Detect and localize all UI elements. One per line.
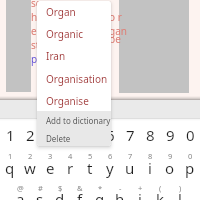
- staticText: u: [125, 158, 135, 178]
- button[interactable]: s: [30, 189, 50, 200]
- button[interactable]: 0: [180, 151, 200, 165]
- staticText: (: [159, 183, 162, 193]
- staticText: be: [109, 32, 121, 46]
- button[interactable]: *: [90, 183, 110, 197]
- staticText: 1: [8, 151, 13, 161]
- staticText: $: [58, 183, 63, 193]
- staticText: 2: [26, 125, 35, 145]
- staticText: a: [16, 189, 25, 200]
- button[interactable]: 8: [140, 151, 160, 165]
- button[interactable]: 7: [120, 125, 140, 146]
- button[interactable]: 1: [0, 125, 20, 146]
- button[interactable]: t: [80, 158, 100, 179]
- staticText: e: [46, 158, 55, 178]
- staticText: s: [36, 189, 44, 200]
- staticText: 8: [148, 151, 153, 161]
- staticText: Organ: [46, 5, 76, 19]
- staticText: y: [106, 158, 114, 178]
- button[interactable]: 0: [180, 125, 200, 146]
- staticText: f: [77, 189, 83, 200]
- button[interactable]: (: [150, 183, 170, 197]
- button[interactable]: Iran: [37, 45, 111, 67]
- staticText: p: [31, 52, 38, 66]
- button[interactable]: 4: [60, 151, 80, 165]
- button[interactable]: 5: [80, 151, 100, 165]
- staticText: 3: [46, 125, 55, 145]
- staticText: o r: [109, 10, 122, 24]
- staticText: 0: [188, 151, 193, 161]
- button[interactable]: Organic: [37, 23, 111, 45]
- button[interactable]: l: [170, 189, 190, 200]
- button[interactable]: +: [130, 183, 150, 197]
- staticText: 8: [146, 125, 155, 145]
- button[interactable]: 9: [160, 151, 180, 165]
- staticText: ): [179, 183, 182, 193]
- button[interactable]: 6: [100, 151, 120, 165]
- staticText: d: [55, 189, 65, 200]
- staticText: 3: [48, 151, 53, 161]
- staticText: 6: [106, 125, 115, 145]
- button[interactable]: 8: [140, 125, 160, 146]
- button[interactable]: 1: [0, 151, 20, 165]
- staticText: se: [31, 0, 42, 10]
- button[interactable]: 9: [160, 125, 180, 146]
- button[interactable]: y: [100, 158, 120, 179]
- staticText: h: [115, 189, 125, 200]
- button[interactable]: 7: [120, 151, 140, 165]
- button[interactable]: 2: [20, 151, 40, 165]
- button[interactable]: 3: [40, 125, 60, 146]
- button[interactable]: -: [110, 183, 130, 197]
- button[interactable]: q: [0, 158, 20, 179]
- staticText: #: [38, 183, 43, 193]
- staticText: &: [77, 183, 83, 193]
- button[interactable]: u: [120, 158, 140, 179]
- staticText: i: [148, 158, 152, 178]
- staticText: 4: [66, 125, 75, 145]
- staticText: *: [98, 183, 103, 193]
- button[interactable]: Add to dictionary: [37, 111, 111, 129]
- button[interactable]: Organ: [37, 1, 111, 23]
- staticText: -: [119, 183, 122, 193]
- button[interactable]: 6: [100, 125, 120, 146]
- button[interactable]: 2: [20, 125, 40, 146]
- staticText: Iran: [46, 49, 66, 63]
- staticText: w: [24, 158, 36, 178]
- button[interactable]: &: [70, 183, 90, 197]
- button[interactable]: i: [140, 158, 160, 179]
- button[interactable]: g: [90, 189, 110, 200]
- staticText: 7: [128, 151, 133, 161]
- button[interactable]: w: [20, 158, 40, 179]
- button[interactable]: r: [60, 158, 80, 179]
- button[interactable]: e: [40, 158, 60, 179]
- button[interactable]: d: [50, 189, 70, 200]
- button[interactable]: #: [30, 183, 50, 197]
- staticText: st: [31, 38, 40, 52]
- staticText: 4: [68, 151, 73, 161]
- button[interactable]: f: [70, 189, 90, 200]
- button[interactable]: ): [170, 183, 190, 197]
- button[interactable]: @: [10, 183, 30, 197]
- button[interactable]: j: [130, 189, 150, 200]
- button[interactable]: p: [180, 158, 200, 179]
- button[interactable]: k: [150, 189, 170, 200]
- button[interactable]: 3: [40, 151, 60, 165]
- button[interactable]: $: [50, 183, 70, 197]
- staticText: 2: [28, 151, 33, 161]
- button[interactable]: a: [10, 189, 30, 200]
- staticText: @: [17, 183, 24, 193]
- staticText: r: [67, 158, 74, 178]
- staticText: 6: [108, 151, 113, 161]
- button[interactable]: h: [110, 189, 130, 200]
- button[interactable]: Organisation: [37, 68, 111, 90]
- button[interactable]: Delete: [37, 129, 111, 146]
- staticText: 9: [168, 151, 173, 161]
- staticText: Delete: [46, 133, 71, 144]
- staticText: Organic: [46, 27, 84, 41]
- staticText: o: [165, 158, 175, 178]
- button[interactable]: Organise: [37, 90, 111, 112]
- button[interactable]: o: [160, 158, 180, 179]
- button[interactable]: 4: [60, 125, 80, 146]
- staticText: 7: [126, 125, 135, 145]
